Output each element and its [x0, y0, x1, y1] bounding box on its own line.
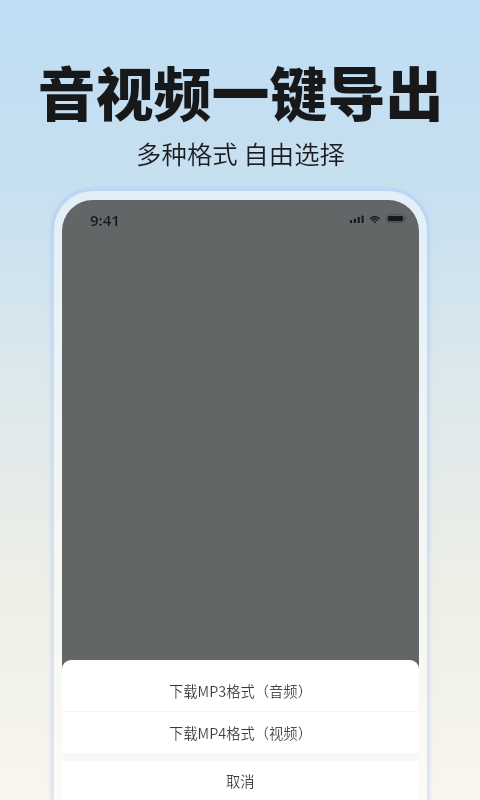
staticText: 下载MP4格式（视频） — [169, 722, 312, 743]
button[interactable]: 下载MP3格式（音频） — [62, 669, 419, 711]
other: Signal, Wi-Fi and battery status — [350, 214, 406, 223]
staticText: 下载MP3格式（音频） — [169, 680, 312, 701]
staticText: 9:41 — [90, 210, 120, 230]
button[interactable]: 下载MP4格式（视频） — [62, 712, 419, 753]
staticText: 多种格式 自由选择 — [136, 135, 345, 172]
staticText: 取消 — [226, 770, 255, 791]
button[interactable]: 取消 — [62, 761, 419, 800]
staticText: 音视频一键导出 — [37, 49, 444, 133]
